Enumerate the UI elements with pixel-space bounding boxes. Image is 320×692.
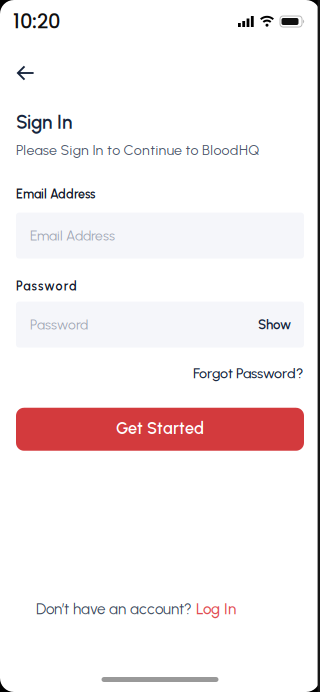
button[interactable]: Show (258, 317, 291, 333)
button[interactable]: Log In (196, 600, 236, 618)
button[interactable]: Back (0, 41, 34, 80)
staticText: Please Sign In to Continue to BloodHQ (16, 142, 259, 159)
button[interactable]: Forgot Password? (193, 365, 303, 382)
staticText: Password (16, 279, 77, 294)
staticText: Email Address (16, 187, 95, 202)
staticText: Log In (196, 600, 236, 618)
button[interactable]: Email Address (16, 213, 304, 259)
staticText: Forgot Password? (193, 365, 303, 382)
staticText: 10:20 (13, 8, 60, 35)
button[interactable]: Password (16, 302, 304, 348)
staticText: Don’t have an account? (36, 600, 196, 618)
staticText: Show (258, 317, 291, 333)
button[interactable]: Get Started (16, 408, 304, 451)
staticText: Get Started (116, 418, 204, 438)
staticText: Sign In (16, 111, 72, 134)
staticText: Email Address (30, 227, 115, 244)
staticText: Password (30, 316, 88, 333)
